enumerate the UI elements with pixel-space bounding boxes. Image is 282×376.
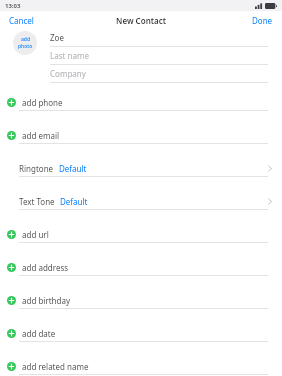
button[interactable]: Ringtone	[0, 160, 282, 177]
button[interactable]: Cancel	[0, 12, 43, 29]
button[interactable]: add url	[0, 226, 282, 243]
button[interactable]: add email	[0, 127, 282, 144]
button[interactable]: Add photo	[13, 31, 37, 55]
button[interactable]: Company	[50, 65, 268, 83]
staticText: add address	[22, 262, 69, 273]
staticText: Last name	[50, 50, 89, 61]
staticText: add email	[22, 130, 60, 141]
button[interactable]: Zoe	[50, 29, 268, 47]
staticText: Zoe	[50, 32, 64, 43]
button[interactable]: add related name	[0, 358, 282, 375]
staticText: Default	[59, 163, 87, 174]
button[interactable]: Last name	[50, 47, 268, 65]
button[interactable]: add address	[0, 259, 282, 276]
staticText: add date	[22, 328, 56, 339]
button[interactable]: Text Tone	[0, 193, 282, 210]
button[interactable]: add phone	[0, 94, 282, 111]
staticText: Text Tone	[19, 196, 55, 207]
button[interactable]: Done	[243, 12, 282, 29]
staticText: add related name	[22, 361, 89, 372]
staticText: add birthday	[22, 295, 71, 306]
staticText: add	[21, 36, 31, 43]
staticText: Company	[50, 68, 86, 79]
staticText: photo	[18, 43, 33, 50]
staticText: add phone	[22, 97, 63, 108]
staticText: add url	[22, 229, 49, 240]
staticText: New Contact	[116, 15, 166, 26]
staticText: 13:03	[5, 2, 21, 10]
staticText: Default	[60, 196, 88, 207]
staticText: Ringtone	[19, 163, 54, 174]
button[interactable]: add birthday	[0, 292, 282, 309]
staticText: Cancel	[9, 15, 34, 26]
staticText: Done	[252, 15, 273, 26]
button[interactable]: add date	[0, 325, 282, 342]
